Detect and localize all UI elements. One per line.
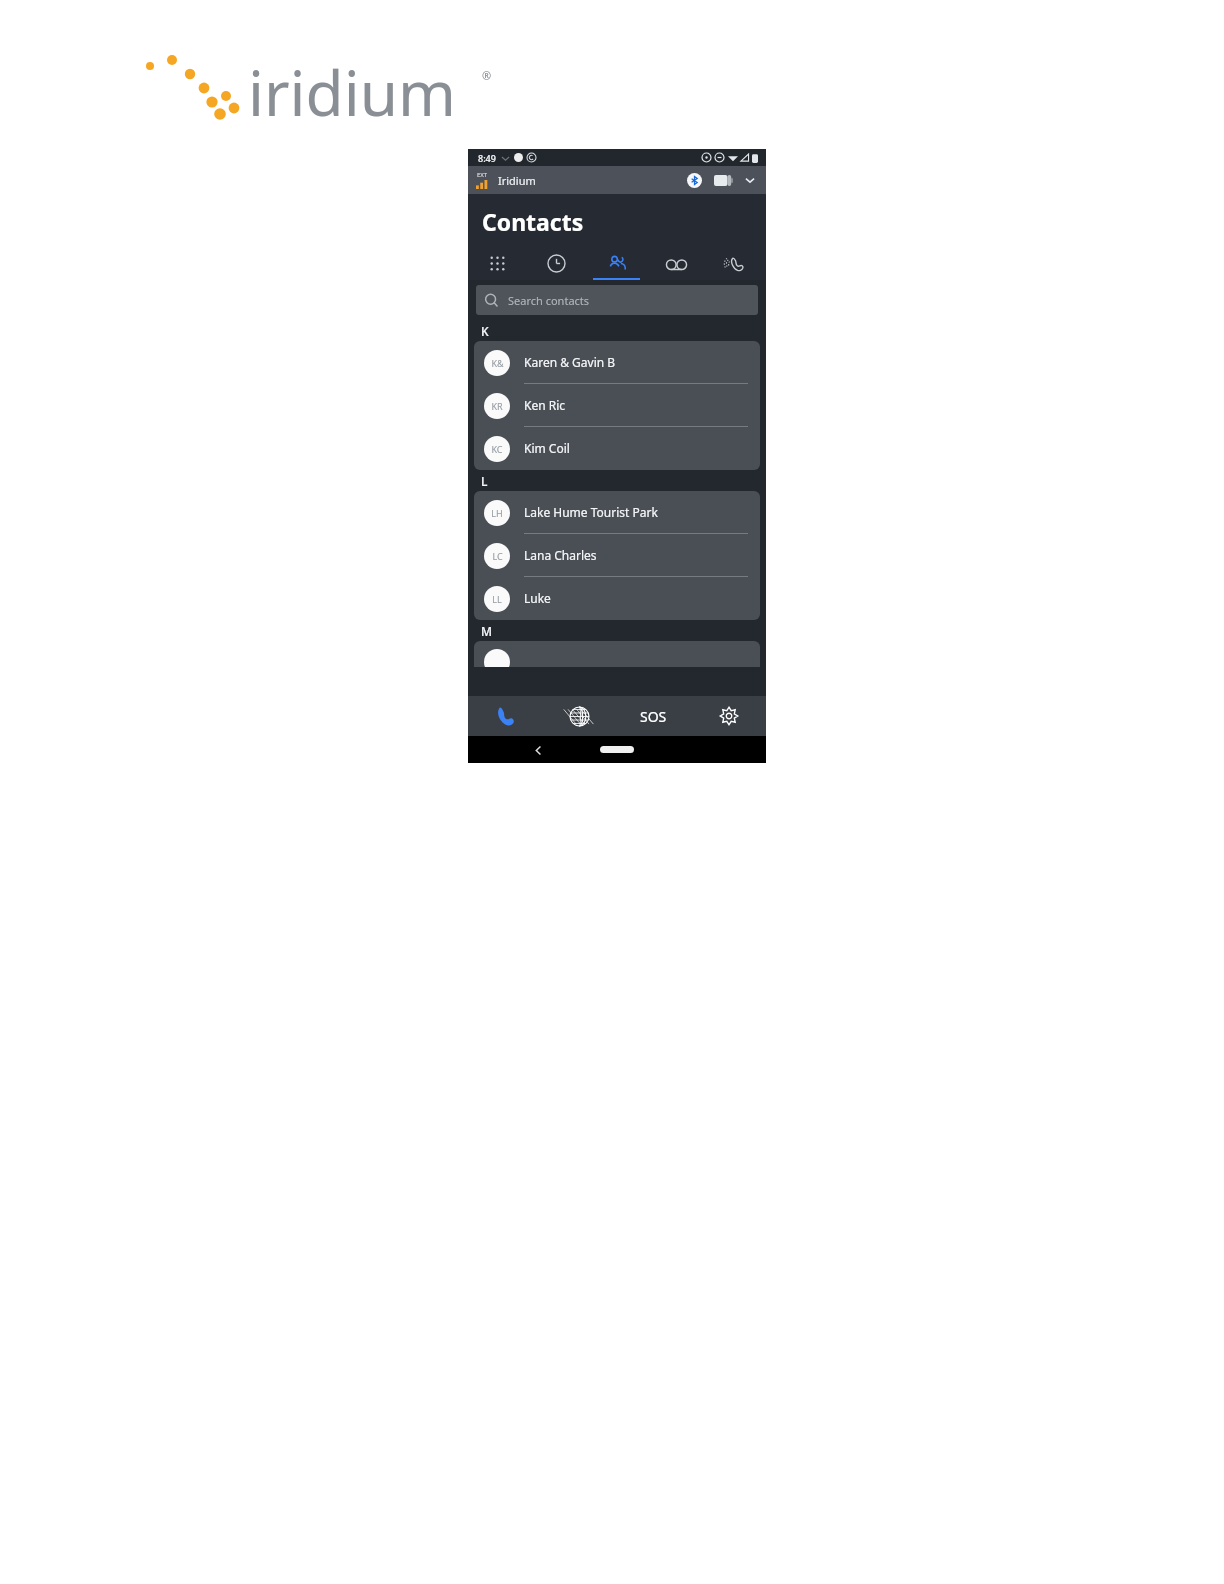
staticText: Kim Coil — [524, 440, 570, 456]
staticText: Contacts — [482, 206, 584, 237]
button[interactable]: Contacts — [586, 247, 646, 280]
staticText: LC — [492, 550, 503, 562]
staticText: K& — [491, 357, 504, 369]
staticText: ® — [482, 68, 492, 83]
staticText: Lake Hume Tourist Park — [524, 504, 658, 520]
staticText: 8:49 — [478, 152, 496, 164]
staticText: EXT — [477, 171, 488, 179]
staticText: KC — [491, 443, 503, 455]
button[interactable]: LL — [474, 577, 760, 620]
staticText: Search contacts — [508, 293, 590, 308]
button[interactable]: Settings — [691, 696, 766, 736]
staticText: Lana Charles — [524, 547, 597, 563]
button[interactable]: Search contacts — [476, 285, 758, 315]
staticText: Iridium — [498, 173, 536, 188]
button[interactable]: Back — [528, 740, 548, 760]
button[interactable]: LC — [474, 534, 760, 577]
button[interactable]: Dial pad — [468, 247, 527, 280]
other: Expand — [744, 174, 756, 186]
button[interactable]: Call settings — [706, 247, 766, 280]
staticText: iridium — [248, 50, 457, 122]
button[interactable]: Home — [600, 746, 634, 753]
staticText: M — [481, 623, 493, 639]
button[interactable]: Phone — [468, 696, 542, 736]
button[interactable]: Recents — [527, 247, 586, 280]
staticText: Luke — [524, 590, 551, 606]
button[interactable]: KR — [474, 384, 760, 427]
button[interactable]: KC — [474, 427, 760, 470]
staticText: Karen & Gavin B — [524, 354, 616, 370]
staticText: LL — [492, 593, 502, 605]
staticText: L — [481, 473, 488, 489]
button[interactable]: SOS — [616, 696, 691, 736]
button[interactable]: LH — [474, 491, 760, 534]
staticText: LH — [491, 507, 503, 519]
button[interactable]: Voicemail — [646, 247, 706, 280]
button[interactable]: Network — [542, 696, 616, 736]
staticText: KR — [491, 400, 503, 412]
staticText: Ken Ric — [524, 397, 566, 413]
staticText: K — [481, 323, 489, 339]
staticText: SOS — [640, 707, 667, 726]
button[interactable]: K& — [474, 341, 760, 384]
